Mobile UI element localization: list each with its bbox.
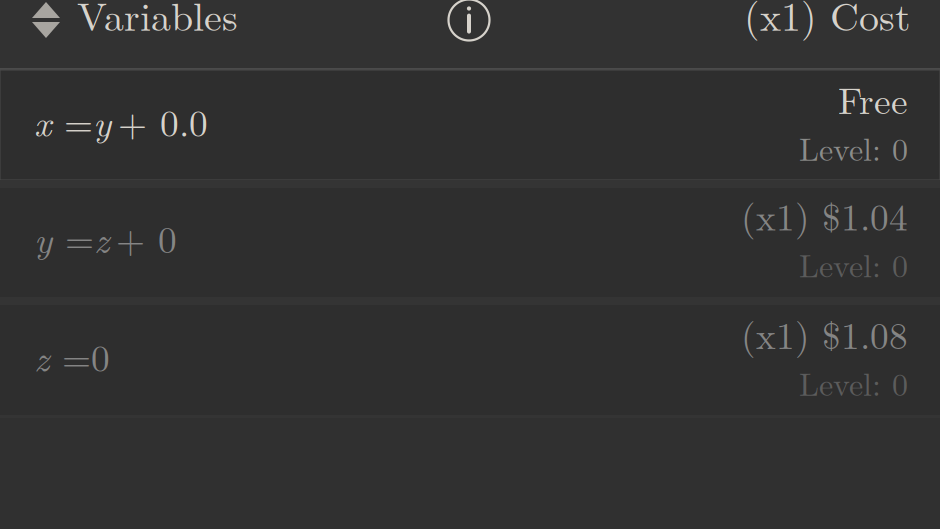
staticText: y =z + 0 bbox=[34, 212, 177, 263]
staticText: (x1) $1.04 bbox=[741, 188, 908, 241]
button[interactable]: Information bbox=[448, 0, 490, 41]
button[interactable]: (x1) Cost bbox=[726, 0, 940, 42]
button[interactable]: x equals y plus 0.0, Free, Level: 0 bbox=[0, 70, 940, 180]
button[interactable]: y equals z plus 0, (x1) $1.04, Level: 0 bbox=[0, 188, 940, 297]
staticText: (x1) $1.08 bbox=[741, 307, 908, 360]
staticText: x =y + 0.0 bbox=[34, 95, 208, 147]
staticText: Free bbox=[838, 72, 908, 125]
staticText: Level: 0 bbox=[799, 241, 908, 287]
staticText: z =0 bbox=[34, 330, 110, 382]
staticText: (x1) Cost bbox=[744, 0, 911, 42]
staticText: Level: 0 bbox=[799, 360, 908, 405]
button[interactable]: z equals 0, (x1) $1.08, Level: 0 bbox=[0, 305, 940, 415]
staticText: Level: 0 bbox=[799, 125, 908, 170]
staticText: Variables bbox=[77, 0, 238, 42]
button[interactable]: Variables bbox=[0, 0, 245, 42]
